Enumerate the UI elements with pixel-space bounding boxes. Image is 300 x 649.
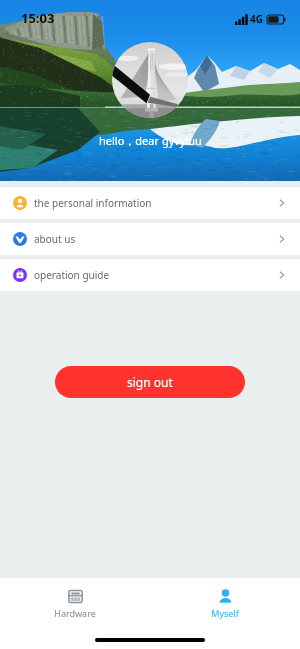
staticText: the personal information — [34, 196, 152, 210]
button[interactable]: sign out — [55, 366, 245, 398]
staticText: 15:03 — [21, 9, 55, 27]
staticText: hello，dear gyvyluu — [99, 133, 202, 148]
button[interactable]: Myself — [150, 578, 300, 619]
button[interactable]: about us — [0, 223, 300, 255]
staticText: Myself — [211, 607, 239, 619]
staticText: sign out — [127, 374, 173, 390]
staticText: Hardware — [54, 607, 96, 619]
button[interactable]: Hardware — [0, 578, 150, 619]
staticText: operation guide — [34, 268, 110, 282]
staticText: 4G — [250, 12, 263, 26]
button[interactable]: Avatar — [112, 42, 188, 118]
button[interactable]: the personal information — [0, 187, 300, 219]
button[interactable]: operation guide — [0, 259, 300, 291]
staticText: about us — [34, 232, 76, 246]
